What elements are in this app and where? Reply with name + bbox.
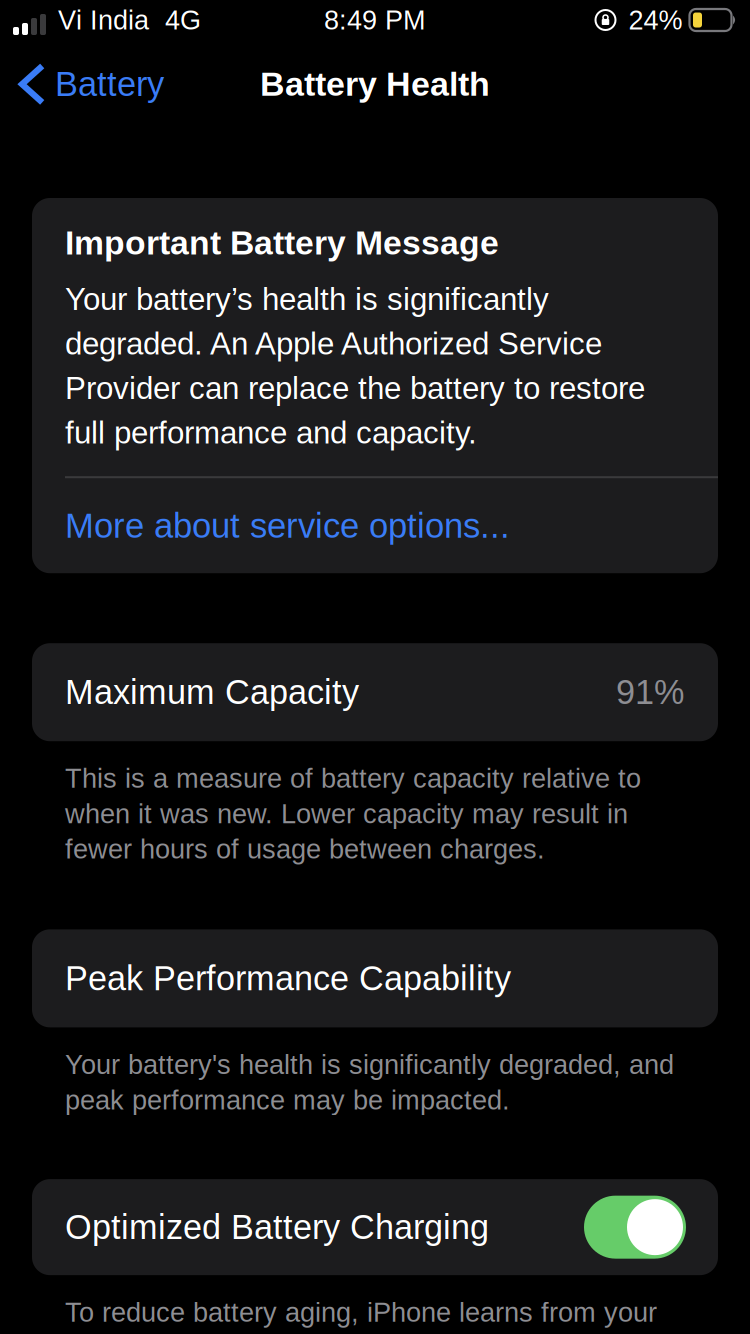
staticText: 91% xyxy=(616,673,684,711)
button[interactable]: Battery xyxy=(0,40,164,128)
button[interactable]: Optimized Battery Charging xyxy=(584,1196,686,1259)
staticText: Important Battery Message xyxy=(65,224,499,262)
staticText: Battery Health xyxy=(260,65,490,103)
staticText: 4G xyxy=(165,5,201,35)
staticText: Vi India xyxy=(58,5,149,35)
staticText: Optimized Battery Charging xyxy=(65,1208,489,1246)
staticText: Maximum Capacity xyxy=(65,673,359,711)
staticText: Battery xyxy=(55,65,164,103)
staticText: Your battery's health is significantly d… xyxy=(65,1049,674,1115)
staticText: More about service options... xyxy=(65,506,510,545)
button[interactable]: Peak Performance Capability xyxy=(32,929,718,1027)
staticText: This is a measure of battery capacity re… xyxy=(65,763,641,864)
staticText: Peak Performance Capability xyxy=(65,959,511,997)
button[interactable]: More about service options... xyxy=(32,478,718,573)
staticText: Your battery’s health is significantly d… xyxy=(65,282,645,450)
staticText: 24% xyxy=(628,5,682,35)
staticText: 8:49 PM xyxy=(324,5,426,35)
staticText: To reduce battery aging, iPhone learns f… xyxy=(65,1297,657,1334)
